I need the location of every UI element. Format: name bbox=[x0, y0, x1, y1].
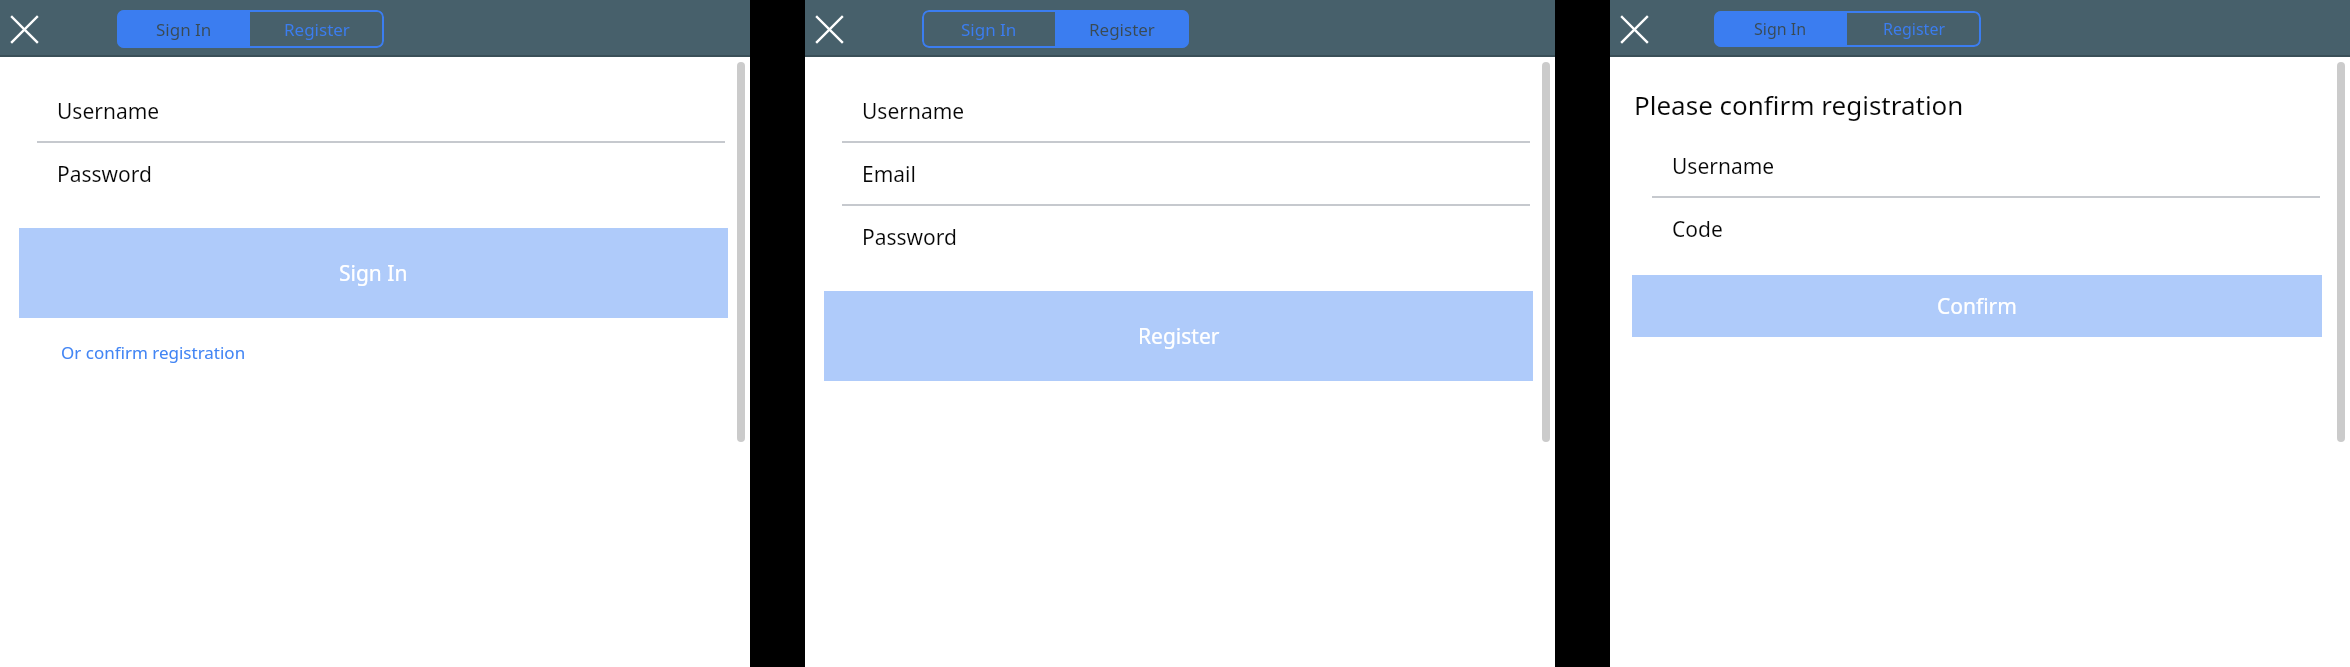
button[interactable]: Close bbox=[0, 5, 48, 53]
button[interactable]: Password bbox=[0, 143, 750, 206]
staticText: Password bbox=[57, 160, 152, 189]
button[interactable]: Register bbox=[250, 10, 384, 48]
button[interactable]: Register bbox=[1055, 10, 1189, 48]
button[interactable]: Username bbox=[805, 80, 1555, 143]
button[interactable]: Password bbox=[805, 206, 1555, 269]
button[interactable]: Register bbox=[1847, 11, 1981, 47]
staticText: Email bbox=[862, 160, 916, 189]
button[interactable]: Confirm bbox=[1632, 275, 2322, 337]
button[interactable]: Or confirm registration bbox=[61, 341, 246, 364]
staticText: Register bbox=[1883, 18, 1946, 40]
staticText: Sign In bbox=[961, 18, 1017, 41]
staticText: Password bbox=[862, 223, 957, 252]
staticText: Sign In bbox=[156, 18, 212, 41]
staticText: Sign In bbox=[1754, 18, 1807, 40]
button[interactable]: Close bbox=[805, 5, 853, 53]
staticText: Code bbox=[1672, 215, 1723, 244]
button[interactable]: Sign In bbox=[117, 10, 250, 48]
button[interactable]: Code bbox=[1610, 198, 2350, 261]
staticText: Register bbox=[284, 18, 350, 41]
staticText: Username bbox=[57, 97, 160, 126]
button[interactable]: Sign In bbox=[922, 10, 1055, 48]
staticText: Register bbox=[1089, 18, 1155, 41]
button[interactable]: Email bbox=[805, 143, 1555, 206]
button[interactable]: Username bbox=[0, 80, 750, 143]
staticText: Sign In bbox=[339, 259, 408, 288]
staticText: Please confirm registration bbox=[1634, 87, 1964, 122]
button[interactable]: Sign In bbox=[19, 228, 728, 318]
staticText: Register bbox=[1138, 322, 1220, 351]
button[interactable]: Register bbox=[824, 291, 1533, 381]
staticText: Confirm bbox=[1937, 292, 2017, 321]
button[interactable]: Close bbox=[1610, 5, 1658, 53]
button[interactable]: Sign In bbox=[1714, 11, 1847, 47]
button[interactable]: Username bbox=[1610, 135, 2350, 198]
staticText: Username bbox=[862, 97, 965, 126]
staticText: Username bbox=[1672, 152, 1775, 181]
